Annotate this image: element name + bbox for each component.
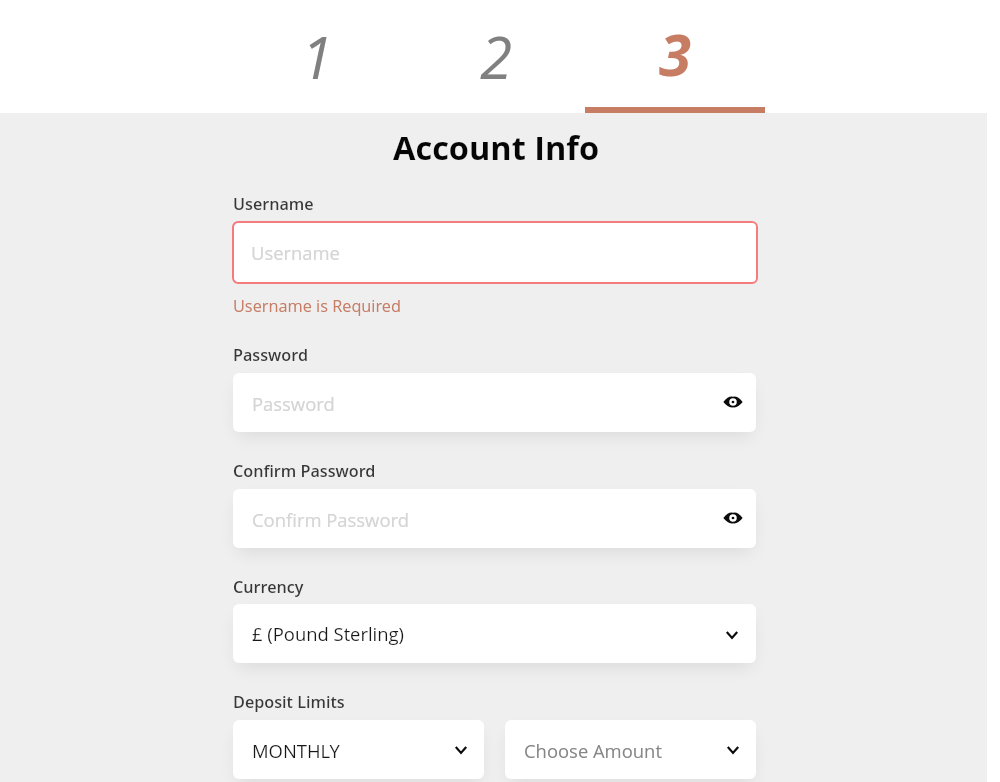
staticText: Confirm Password — [233, 460, 376, 482]
button[interactable]: 1 — [227, 0, 407, 113]
staticText: Deposit Limits — [233, 691, 345, 713]
staticText: Confirm Password — [252, 507, 409, 532]
staticText: Password — [233, 344, 308, 366]
staticText: Username — [251, 240, 340, 265]
staticText: Password — [252, 391, 335, 416]
button[interactable]: 3 — [585, 0, 765, 110]
staticText: 3 — [659, 14, 691, 93]
button[interactable]: £ (Pound Sterling) — [233, 604, 756, 663]
button[interactable]: MONTHLY — [233, 720, 484, 779]
button[interactable]: Confirm Password — [233, 489, 756, 548]
staticText: 2 — [480, 17, 512, 96]
button[interactable]: Show confirm password — [717, 502, 749, 534]
button[interactable]: Password — [233, 373, 756, 432]
button[interactable]: 2 — [406, 0, 586, 113]
staticText: Account Info — [393, 125, 600, 169]
staticText: Username — [233, 193, 314, 215]
button[interactable]: Show password — [717, 386, 749, 418]
staticText: £ (Pound Sterling) — [252, 621, 405, 646]
staticText: Username is Required — [233, 295, 401, 317]
button[interactable]: Choose Amount — [505, 720, 756, 779]
staticText: 1 — [301, 17, 333, 96]
staticText: Choose Amount — [524, 738, 662, 763]
staticText: Currency — [233, 576, 304, 598]
staticText: MONTHLY — [252, 738, 340, 763]
button[interactable]: Username — [232, 221, 758, 284]
